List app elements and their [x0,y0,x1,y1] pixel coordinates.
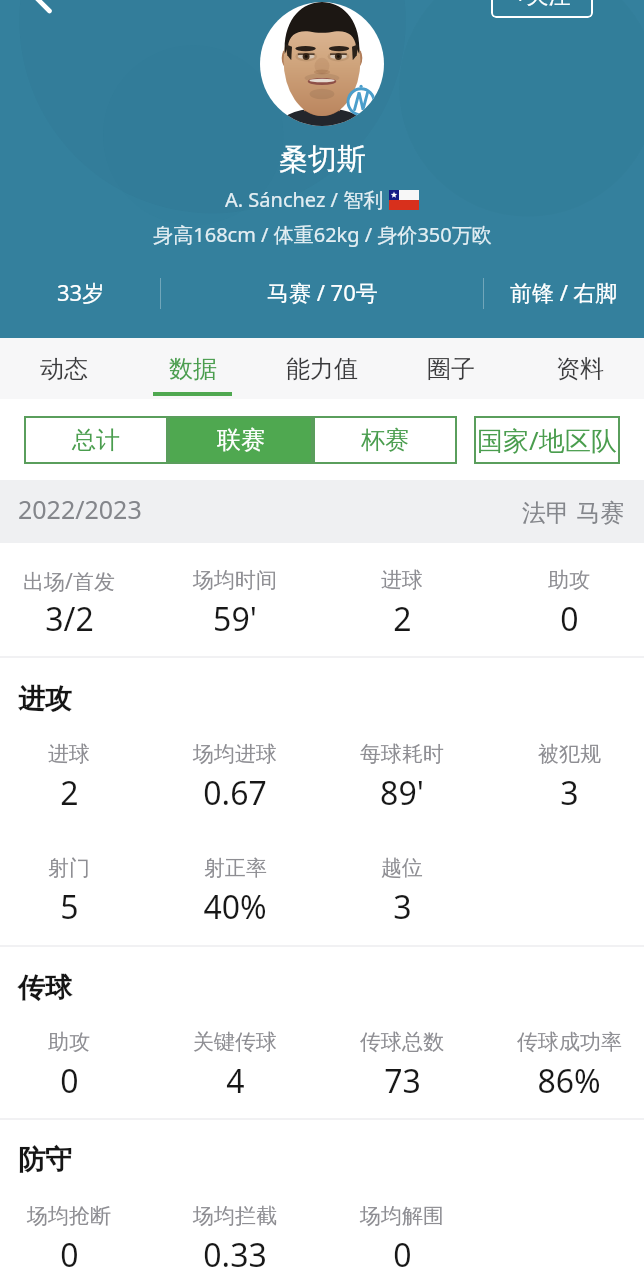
staticText: 0.67 [203,771,267,815]
staticText: 射门 [48,855,90,881]
staticText: 5 [60,885,79,929]
staticText: 被犯规 [538,741,601,767]
staticText: 传球 [18,971,72,1005]
staticText: 0 [393,1233,412,1277]
staticText: 法甲 马赛 [522,495,625,528]
button[interactable]: 33岁 [0,264,161,320]
staticText: 进攻 [18,682,72,716]
staticText: 传球总数 [360,1029,444,1055]
staticText: 33岁 [57,277,105,307]
button[interactable]: 联赛 [168,416,313,464]
staticText: 40% [203,885,267,929]
staticText: 前锋 / 右脚 [510,277,618,307]
staticText: 圈子 [427,354,475,384]
button[interactable]: 国家/地区队 [474,416,620,464]
staticText: 59' [213,597,257,641]
button[interactable]: 杯赛 [313,416,457,464]
staticText: 总计 [72,425,120,455]
staticText: 马赛 / 70号 [267,277,378,307]
staticText: 数据 [169,354,217,384]
staticText: 进球 [48,741,90,767]
staticText: 场均拦截 [193,1203,277,1229]
staticText: 2022/2023 [18,492,142,526]
staticText: 关键传球 [193,1029,277,1055]
button[interactable]: Player photo [260,2,384,126]
staticText: 出场/首发 [23,567,115,596]
staticText: 防守 [18,1143,72,1177]
staticText: 73 [384,1059,421,1103]
staticText: 4 [226,1059,245,1103]
button[interactable]: 数据 [128,338,257,399]
staticText: 场均时间 [193,567,277,593]
staticText: 联赛 [217,425,265,455]
staticText: 射正率 [204,855,267,881]
staticText: 每球耗时 [360,741,444,767]
staticText: +关注 [514,0,571,9]
staticText: 0 [60,1059,79,1103]
staticText: 传球成功率 [517,1029,622,1055]
button[interactable]: 能力值 [257,338,386,399]
staticText: 进球 [381,567,423,593]
staticText: 0 [60,1233,79,1277]
staticText: A. Sánchez / 智利 [225,186,389,213]
staticText: 3 [393,885,412,929]
button[interactable]: Back [13,0,62,24]
button[interactable]: 资料 [515,338,644,399]
staticText: 3/2 [45,597,94,641]
button[interactable]: 总计 [24,416,168,464]
staticText: 场均抢断 [27,1203,111,1229]
button[interactable]: 前锋 / 右脚 [483,264,644,320]
staticText: 国家/地区队 [477,422,617,458]
button[interactable]: +关注 [491,0,593,18]
staticText: 桑切斯 [279,141,366,178]
staticText: 越位 [381,855,423,881]
staticText: 2 [393,597,412,641]
staticText: 能力值 [286,354,358,384]
staticText: 杯赛 [361,425,409,455]
staticText: 2 [60,771,79,815]
staticText: 场均进球 [193,741,277,767]
staticText: 89' [380,771,424,815]
staticText: 0 [560,597,579,641]
staticText: 0.33 [203,1233,267,1277]
staticText: 助攻 [48,1029,90,1055]
button[interactable]: 动态 [0,338,128,399]
staticText: 资料 [556,354,604,384]
staticText: 3 [560,771,579,815]
staticText: 身高168cm / 体重62kg / 身价350万欧 [153,221,492,248]
staticText: 助攻 [548,567,590,593]
button[interactable]: 马赛 / 70号 [161,264,483,320]
staticText: 场均解围 [360,1203,444,1229]
staticText: 动态 [40,354,88,384]
staticText: 86% [537,1059,601,1103]
button[interactable]: 圈子 [386,338,515,399]
